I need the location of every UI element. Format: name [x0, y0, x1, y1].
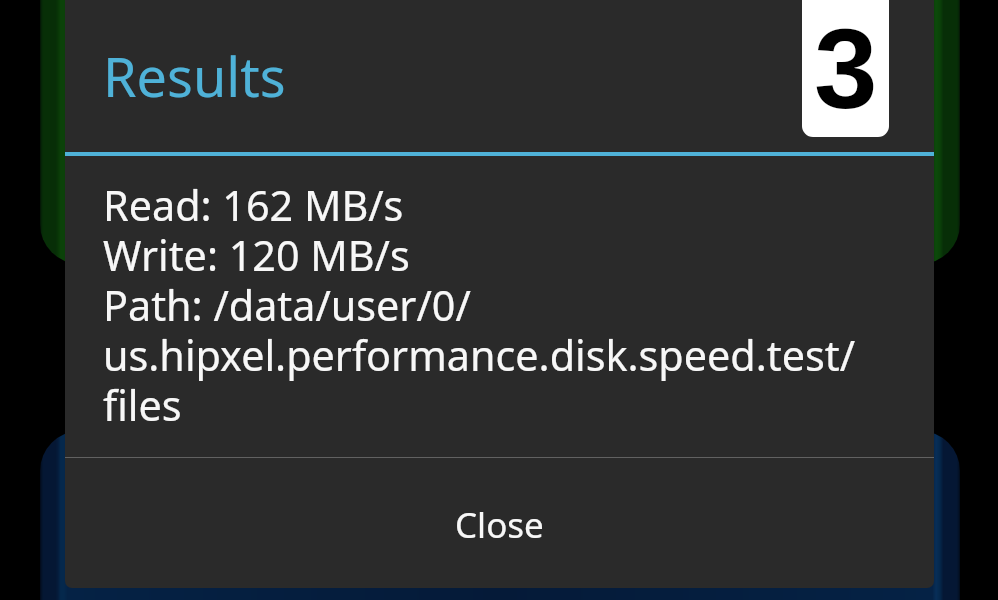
button[interactable]: Start test	[40, 0, 960, 264]
staticText: Results	[103, 39, 286, 113]
button[interactable]: Close	[65, 458, 934, 588]
button[interactable]: Run number 3	[802, 0, 889, 137]
staticText: Close	[455, 501, 544, 549]
button[interactable]: Settings	[40, 431, 960, 600]
staticText: Read: 162 MB/s Write: 120 MB/s Path: /da…	[103, 177, 856, 433]
staticText: 3	[814, 5, 878, 132]
